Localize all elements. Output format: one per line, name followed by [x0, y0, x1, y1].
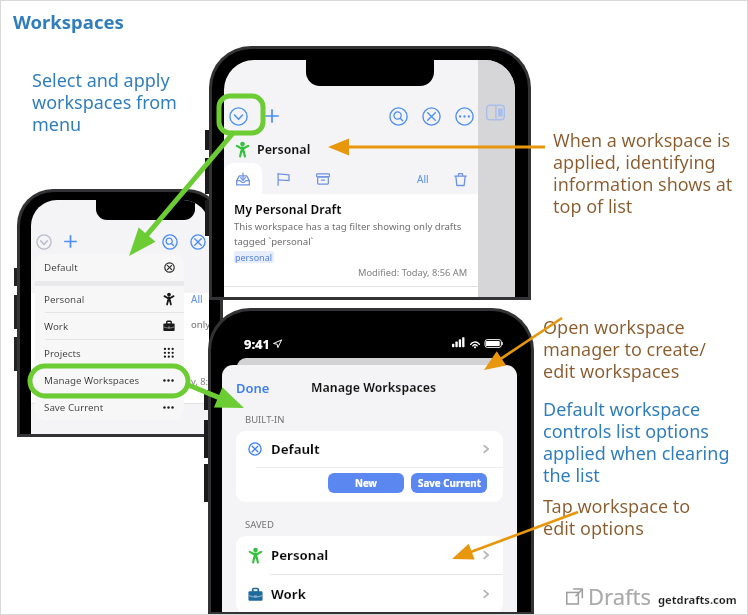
staticText: Open workspace manager to create/ edit w… [543, 315, 743, 383]
staticText: y, 8: [191, 375, 209, 388]
staticText: only [191, 318, 209, 331]
staticText: 9:41 [244, 335, 270, 352]
staticText: This workspace has a tag filter showing … [234, 220, 462, 248]
button[interactable]: New draft [261, 105, 283, 127]
staticText: All [417, 172, 429, 186]
button[interactable]: New draft [61, 232, 80, 251]
button[interactable]: Flagged [262, 163, 303, 194]
staticText: My Personal Draft [234, 201, 342, 217]
staticText: Manage Workspaces [44, 374, 140, 387]
staticText: When a workspace is applied, identifying… [553, 128, 748, 218]
staticText: Work [271, 585, 306, 603]
button[interactable]: Personal [236, 536, 503, 574]
button[interactable]: Save Current [35, 394, 184, 420]
staticText: Manage Workspaces [311, 379, 437, 396]
button[interactable]: More [453, 105, 475, 127]
button[interactable]: Personal [35, 286, 184, 312]
staticText: Projects [44, 347, 81, 360]
staticText: Save Current [418, 477, 481, 490]
staticText: Select and apply workspaces from menu [32, 68, 197, 136]
staticText: Personal [257, 141, 311, 158]
button[interactable]: Inbox [224, 163, 262, 194]
button[interactable]: Workspace menu [227, 105, 249, 127]
button[interactable]: Clear list [420, 105, 442, 127]
staticText: Default [271, 440, 320, 458]
staticText: Default workspace controls list options … [543, 397, 743, 487]
staticText: SAVED [245, 518, 274, 531]
button[interactable]: Done [222, 379, 270, 397]
button[interactable]: Work [35, 313, 184, 339]
staticText: All [191, 292, 203, 306]
button[interactable]: Clear list [188, 232, 207, 251]
staticText: Modified: Today, 8:56 AM [358, 266, 468, 279]
button[interactable]: Save Current [411, 473, 487, 493]
button[interactable]: Search [160, 232, 179, 251]
button[interactable]: Manage Workspaces [35, 367, 184, 393]
button[interactable]: Default [236, 431, 503, 467]
button[interactable]: Trash [448, 167, 472, 191]
button[interactable]: Work [236, 575, 503, 612]
staticText: Workspaces [13, 9, 124, 34]
staticText: Drafts [588, 581, 652, 611]
staticText: New [355, 477, 378, 490]
staticText: BUILT-IN [245, 413, 285, 426]
staticText: Done [236, 379, 270, 397]
staticText: getdrafts.com [658, 592, 737, 607]
other: Toggle sidebar [486, 103, 505, 122]
button[interactable]: Workspace menu [34, 232, 53, 251]
button[interactable]: New [328, 473, 404, 493]
staticText: Tap workspace to edit options [543, 494, 743, 540]
staticText: Save Current [44, 401, 104, 414]
button[interactable]: Archive [303, 163, 343, 194]
staticText: Work [44, 320, 69, 333]
staticText: Personal [271, 546, 329, 564]
button[interactable]: All [413, 163, 433, 194]
staticText: Default [44, 261, 78, 274]
staticText: Personal [44, 293, 85, 306]
staticText: personal [235, 251, 273, 263]
button[interactable]: Default [35, 254, 184, 281]
button[interactable]: Search [387, 105, 409, 127]
button[interactable]: Projects [35, 340, 184, 366]
